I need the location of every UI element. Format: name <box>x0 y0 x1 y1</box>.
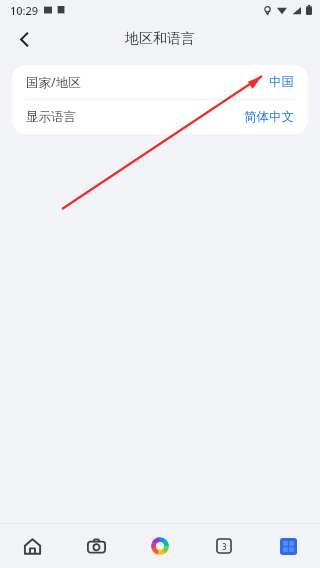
staticText: 简体中文 <box>244 109 294 125</box>
staticText: 地区和语言 <box>125 30 195 48</box>
staticText: 中国 <box>269 74 294 90</box>
button[interactable]: Assistant <box>128 524 192 568</box>
staticText: 3 <box>222 541 227 552</box>
staticText: 显示语言 <box>26 109 76 125</box>
button[interactable]: Apps <box>256 524 320 568</box>
staticText: 国家/地区 <box>26 74 81 91</box>
button[interactable]: Back <box>4 20 44 58</box>
button[interactable]: Home <box>0 524 64 568</box>
button[interactable]: Camera <box>64 524 128 568</box>
button[interactable]: 国家/地区 <box>12 65 308 99</box>
button[interactable]: Tabs <box>192 524 256 568</box>
staticText: 10:29 <box>10 3 39 18</box>
button[interactable]: 显示语言 <box>12 100 308 134</box>
